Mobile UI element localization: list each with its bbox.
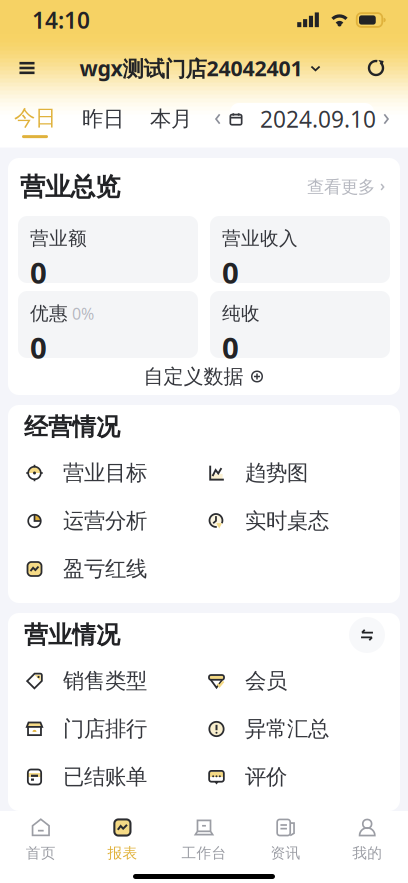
staticText: 0% [72,303,94,324]
staticText: 盈亏红线 [63,556,147,582]
staticText: 营业额 [30,227,87,250]
button[interactable]: 我的 [326,815,408,863]
staticText: 14:10 [32,5,90,35]
staticText: 查看更多 [307,176,375,198]
staticText: 0 [222,253,239,292]
staticText: 0 [30,253,47,292]
staticText: 资讯 [271,844,301,862]
button[interactable]: 盈亏红线 [8,545,190,593]
button[interactable]: 本月 [124,106,192,132]
button[interactable]: 销售类型 [8,657,190,705]
staticText: 经营情况 [24,412,120,442]
button[interactable]: 报表 [82,815,163,863]
button[interactable]: 自定义数据 [8,358,400,395]
button[interactable]: Next day [374,104,398,134]
button[interactable]: 资讯 [245,815,326,863]
staticText: 营业收入 [222,227,298,250]
staticText: 报表 [107,844,137,862]
staticText: 销售类型 [63,668,147,694]
staticText: 昨日 [82,106,124,132]
staticText: 趋势图 [245,460,308,486]
button[interactable]: 异常汇总 [190,705,400,753]
staticText: 已结账单 [63,764,147,790]
button[interactable]: 已结账单 [8,753,190,801]
button[interactable]: 工作台 [163,815,245,863]
staticText: 今日 [14,105,56,131]
staticText: 营业总览 [20,171,120,202]
staticText: 营业目标 [63,460,147,486]
staticText: 门店排行 [63,716,147,742]
button[interactable]: Previous day [206,104,230,134]
button[interactable]: 会员 [190,657,400,705]
button[interactable]: 门店排行 [8,705,190,753]
button[interactable]: 评价 [190,753,400,801]
staticText: 纯收 [222,302,260,325]
button[interactable]: 营业目标 [8,449,190,497]
button[interactable]: Menu [8,46,46,90]
staticText: 本月 [150,106,192,132]
button[interactable]: 昨日 [56,106,124,132]
button[interactable]: Refresh [356,46,396,90]
staticText: 0 [222,328,239,367]
staticText: 运营分析 [63,508,147,534]
button[interactable]: 首页 [0,815,82,863]
staticText: 2024.09.10 [260,104,376,134]
staticText: 自定义数据 [143,364,243,389]
staticText: 会员 [245,668,287,694]
staticText: 评价 [245,764,287,790]
button[interactable]: 查看更多 [307,176,388,198]
staticText: 实时桌态 [245,508,329,534]
button[interactable]: Switch view [346,614,388,656]
button[interactable]: 今日 [14,100,56,138]
staticText: 我的 [352,844,382,862]
staticText: 异常汇总 [245,716,329,742]
button[interactable]: 实时桌态 [190,497,400,545]
staticText: 首页 [26,844,56,862]
staticText: 工作台 [181,844,226,862]
staticText: 营业情况 [24,620,120,650]
staticText: wgx测试门店24042401 [79,54,302,82]
button[interactable]: wgx测试门店24042401 [79,46,322,90]
staticText: 优惠 [30,302,68,325]
button[interactable]: 趋势图 [190,449,400,497]
button[interactable]: 运营分析 [8,497,190,545]
staticText: 0 [30,328,47,367]
